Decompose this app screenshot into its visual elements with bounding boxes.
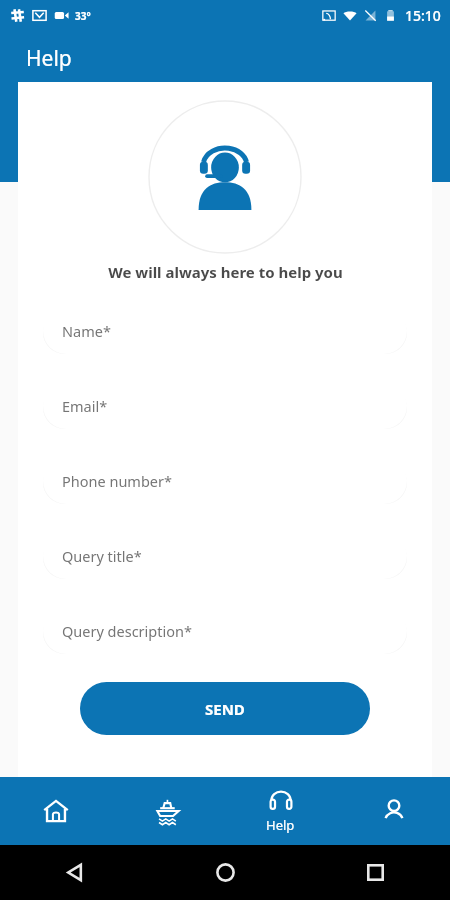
button[interactable]: Recents (300, 845, 450, 900)
button[interactable]: Profile (337, 777, 450, 845)
button[interactable]: Query title* (43, 533, 407, 579)
button[interactable]: Phone number* (43, 458, 407, 504)
button[interactable]: Query description* (43, 608, 407, 654)
staticText: 15:10 (405, 6, 441, 25)
staticText: Query description* (62, 621, 192, 641)
staticText: We will always here to help you (108, 262, 343, 282)
button[interactable]: Ships (112, 777, 224, 845)
staticText: 33° (75, 9, 91, 23)
staticText: Help (26, 44, 72, 73)
staticText: Name* (62, 321, 111, 341)
staticText: Help (266, 816, 295, 834)
button[interactable]: Home (0, 777, 112, 845)
button[interactable]: Help (224, 777, 337, 845)
button[interactable]: Home (150, 845, 300, 900)
staticText: Phone number* (62, 471, 172, 491)
button[interactable]: Back (0, 845, 150, 900)
button[interactable]: SEND (80, 682, 370, 735)
staticText: Email* (62, 396, 108, 416)
button[interactable]: Name* (43, 308, 407, 354)
button[interactable]: Email* (43, 383, 407, 429)
staticText: SEND (205, 699, 245, 719)
staticText: Query title* (62, 546, 142, 566)
